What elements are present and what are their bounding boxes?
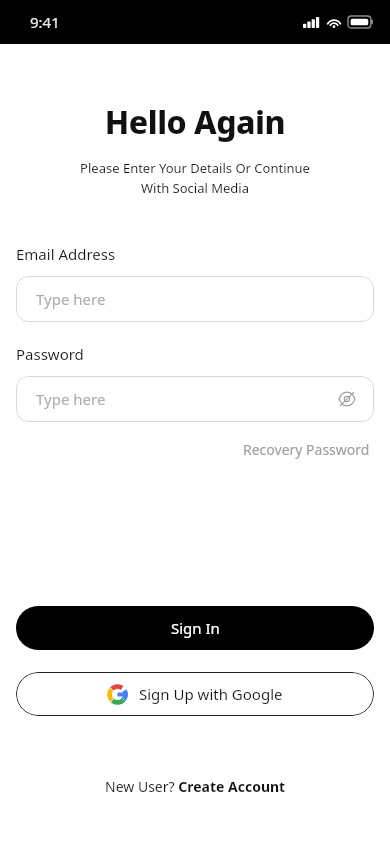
- button[interactable]: Type here: [16, 276, 374, 322]
- staticText: New User? Create Account: [105, 777, 286, 796]
- staticText: Recovery Password: [243, 440, 370, 459]
- staticText: Type here: [36, 289, 106, 309]
- staticText: Sign In: [171, 618, 220, 638]
- staticText: Type here: [36, 389, 106, 409]
- button[interactable]: Sign In: [16, 606, 374, 650]
- staticText: Email Address: [16, 244, 116, 264]
- button[interactable]: New User? Create Account: [97, 773, 294, 800]
- staticText: Hello Again: [0, 100, 390, 144]
- staticText: 9:41: [30, 12, 60, 32]
- staticText: Please Enter Your Details Or Continue Wi…: [24, 159, 366, 197]
- button[interactable]: Type here: [16, 376, 374, 422]
- button[interactable]: Sign Up with Google: [16, 672, 374, 716]
- staticText: Password: [16, 344, 84, 364]
- button[interactable]: Toggle password visibility: [334, 386, 360, 412]
- staticText: Sign Up with Google: [139, 684, 283, 704]
- button[interactable]: Recovery Password: [239, 436, 374, 463]
